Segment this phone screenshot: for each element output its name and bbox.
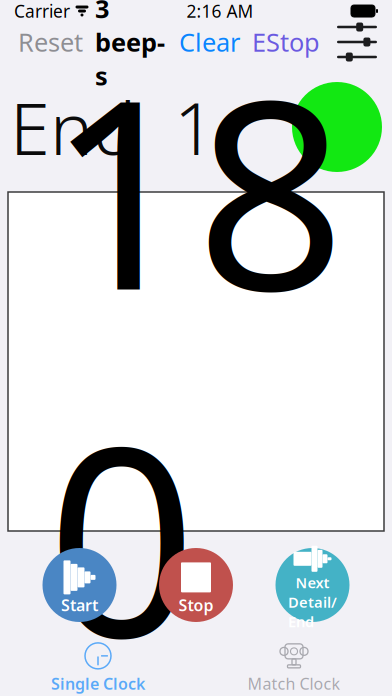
button[interactable]: EStop: [246, 19, 326, 65]
staticText: Single Clock: [51, 673, 145, 694]
staticText: Detail/End: [288, 592, 337, 631]
staticText: 2:16 AM: [186, 0, 253, 22]
staticText: EStop: [252, 25, 320, 59]
staticText: End 1: [10, 79, 215, 175]
button[interactable]: Match Clock: [196, 638, 392, 696]
button[interactable]: Start: [42, 548, 116, 622]
staticText: Stop: [178, 594, 213, 616]
staticText: Start: [61, 594, 98, 616]
staticText: Carrier: [14, 0, 70, 22]
button[interactable]: Single Clock: [0, 638, 196, 696]
staticText: Clear: [179, 25, 240, 59]
staticText: 180: [47, 14, 345, 696]
button[interactable]: Next: [275, 548, 349, 622]
button[interactable]: Reset: [14, 19, 87, 65]
staticText: Match Clock: [247, 673, 340, 694]
button[interactable]: Clear: [173, 19, 246, 65]
staticText: 3 beeps: [95, 0, 165, 92]
button[interactable]: 3 beeps: [87, 0, 173, 98]
staticText: Reset: [18, 25, 83, 59]
button[interactable]: Settings: [334, 24, 380, 60]
button[interactable]: Stop: [159, 548, 233, 622]
staticText: Next: [295, 573, 329, 592]
